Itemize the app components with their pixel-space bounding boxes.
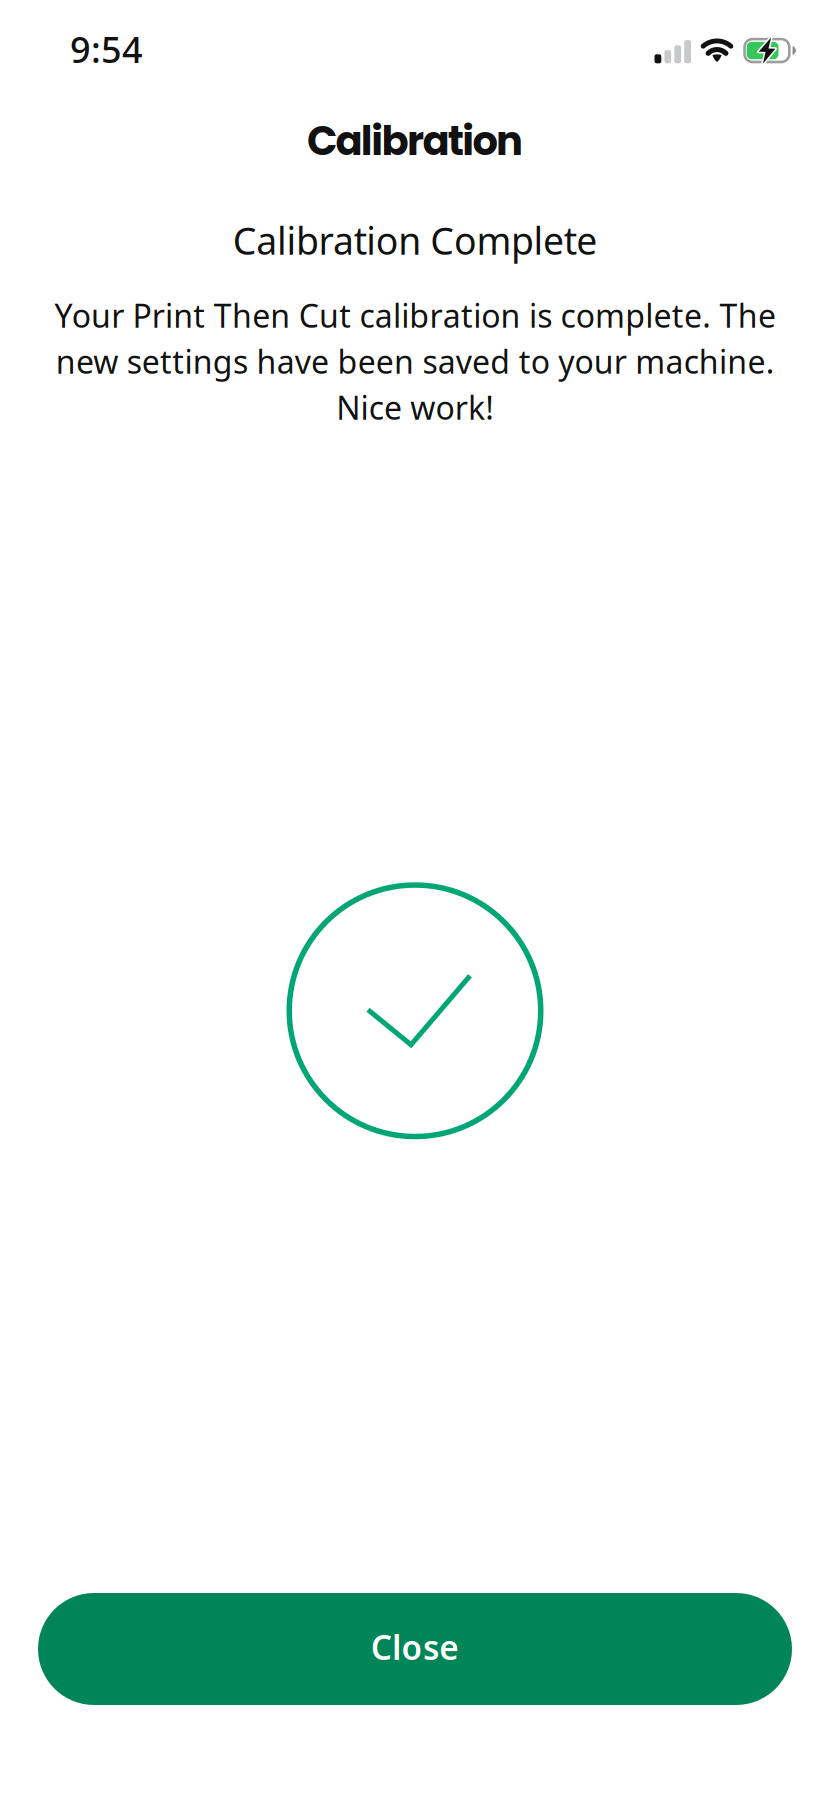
button[interactable]: Close xyxy=(38,1593,792,1705)
staticText: 9:54 xyxy=(70,25,143,73)
staticText: Calibration xyxy=(307,113,523,169)
staticText: Your Print Then Cut calibration is compl… xyxy=(54,294,776,429)
staticText: Calibration Complete xyxy=(233,215,597,265)
staticText: Close xyxy=(371,1625,459,1669)
